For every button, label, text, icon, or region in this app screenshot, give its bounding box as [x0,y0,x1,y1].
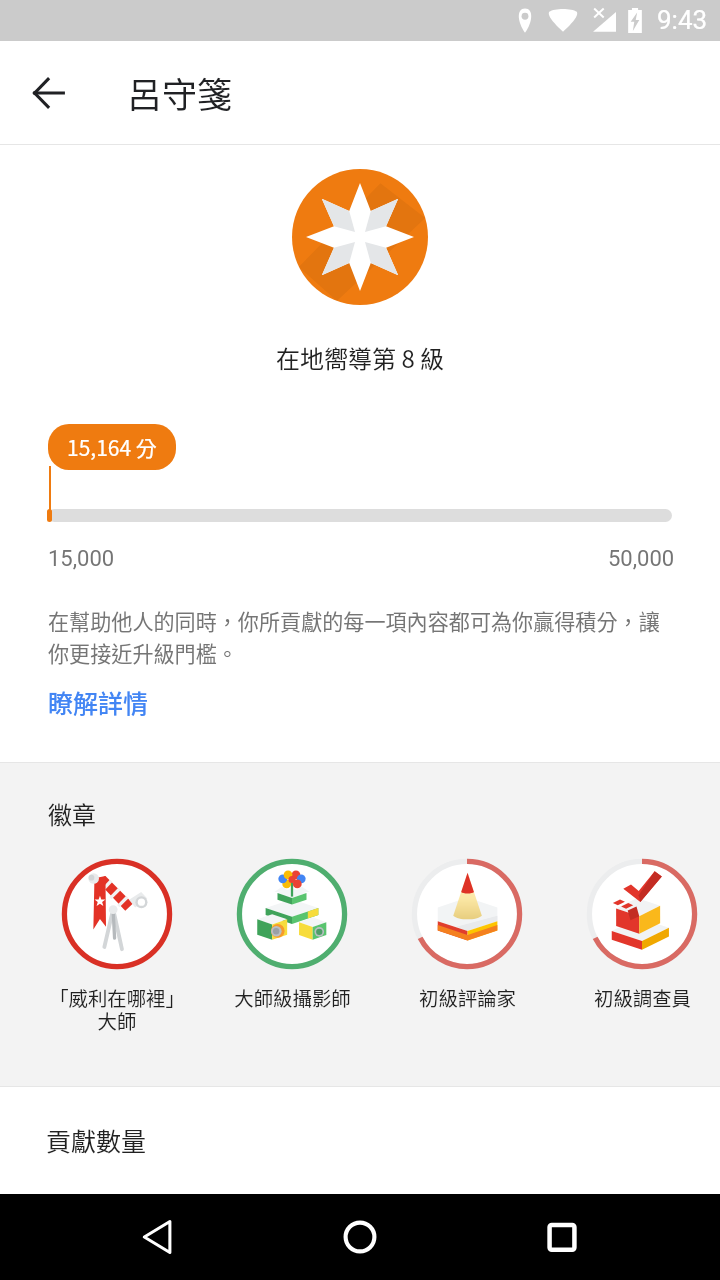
button[interactable]: 初級評論家 [380,859,554,1039]
button[interactable]: Back [13,57,85,129]
staticText: 在幫助他人的同時，你所貢獻的每一項內容都可為你贏得積分，讓你更接近升級門檻。 [48,606,674,668]
button[interactable]: Recent apps [522,1194,602,1280]
staticText: 50,000 [608,546,675,572]
button[interactable]: Back [118,1194,198,1280]
button[interactable]: 15,164 分 [48,424,176,470]
staticText: 9:43 [657,5,708,35]
staticText: 大師級攝影師 [234,983,351,1011]
staticText: 徽章 [48,796,96,831]
staticText: 在地嚮導第 8 級 [276,340,445,375]
staticText: 15,000 [48,546,115,572]
button[interactable]: 初級調查員 [555,859,720,1039]
button[interactable]: 瞭解詳情 [48,684,149,720]
button[interactable]: 「威利在哪裡」 大師 [30,859,204,1039]
staticText: 「威利在哪裡」 大師 [49,983,185,1035]
button[interactable]: Home [320,1194,400,1280]
button[interactable]: 大師級攝影師 [205,859,379,1039]
staticText: 初級調查員 [594,983,691,1011]
staticText: 貢獻數量 [46,1122,147,1158]
staticText: 呂守箋 [127,67,233,118]
staticText: 15,164 分 [67,432,157,462]
staticText: 初級評論家 [419,983,516,1011]
staticText: 瞭解詳情 [48,684,149,720]
